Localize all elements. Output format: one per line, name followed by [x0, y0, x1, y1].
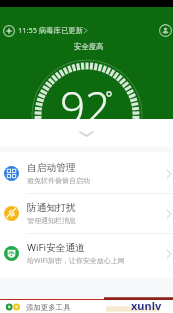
staticText: 自启动管理 [27, 162, 76, 174]
button[interactable] [0, 119, 173, 147]
staticText: 给WiFi加密，让你安全放心上网 [27, 256, 125, 266]
staticText: 管理通知栏消息 [27, 216, 76, 225]
staticText: 避免软件偷偷自启动 [27, 176, 90, 185]
button[interactable]: Account [159, 24, 172, 37]
staticText: 安全度高 [74, 42, 104, 51]
staticText: 防通知打扰 [27, 202, 76, 214]
button[interactable]: 自启动管理 [0, 154, 173, 193]
staticText: 92 [60, 77, 111, 137]
button[interactable]: 防通知打扰 [0, 194, 173, 233]
staticText: WiFi安全通道 [27, 241, 85, 254]
staticText: xunlv [131, 298, 162, 313]
staticText: 11:55 病毒库已更新 [18, 25, 84, 35]
button[interactable]: WiFi安全通道 [0, 234, 173, 273]
button[interactable]: 添加更多工具 [0, 301, 173, 313]
staticText: 添加更多工具 [26, 303, 71, 312]
